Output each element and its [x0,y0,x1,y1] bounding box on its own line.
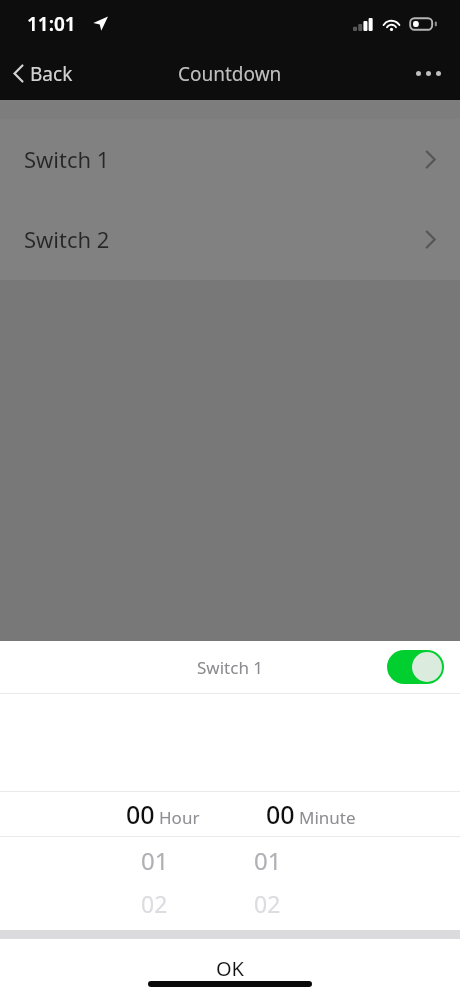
staticText: Switch 2 [24,224,110,254]
staticText: 00 [266,797,295,831]
button[interactable]: Back [0,47,86,100]
staticText: 02 [254,888,281,919]
staticText: Switch 1 [24,144,110,174]
staticText: 01 [141,844,169,877]
staticText: 11:01 [27,11,76,37]
button[interactable]: Switch 1 [0,119,460,199]
button[interactable]: Toggle Switch 1 [387,650,444,684]
staticText: Back [30,61,73,87]
staticText: Switch 1 [197,656,264,679]
staticText: 02 [141,888,168,919]
staticText: 00 [126,797,155,831]
button[interactable]: OK [0,939,460,981]
staticText: 01 [254,844,282,877]
staticText: Hour [159,806,200,829]
staticText: Minute [299,806,356,829]
button[interactable]: Switch 2 [0,199,460,279]
button[interactable]: More options [397,47,460,100]
staticText: Countdown [178,61,282,87]
staticText: OK [216,955,244,981]
